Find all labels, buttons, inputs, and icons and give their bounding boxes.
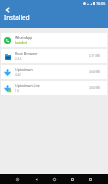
button[interactable]: Home	[50, 175, 59, 184]
button[interactable]: Root Browser	[1, 49, 107, 63]
staticText: 4.42	[15, 73, 21, 77]
staticText: WhatsApp	[15, 35, 33, 40]
staticText: Root Browser	[15, 51, 38, 56]
staticText: 4.71 MB	[89, 54, 100, 58]
button[interactable]: Uptodown	[1, 65, 107, 79]
staticText: 2.4.5	[15, 57, 22, 61]
staticText: Uptodown Lite	[15, 83, 40, 88]
button[interactable]: Recent apps	[68, 175, 77, 184]
staticText: Installed	[4, 13, 30, 22]
button[interactable]: Uptodown Lite	[1, 81, 107, 95]
staticText: 1.6	[15, 89, 20, 93]
button[interactable]: Back	[32, 175, 41, 184]
button[interactable]: Screenshot	[86, 175, 95, 184]
staticText: Installed	[15, 41, 27, 45]
staticText: Uptodown	[15, 67, 33, 72]
button[interactable]: WhatsApp	[1, 33, 107, 47]
staticText: 10:06	[96, 1, 106, 6]
staticText: 4.04 MB	[89, 86, 100, 90]
button[interactable]: Back	[2, 5, 12, 15]
staticText: 4.64 MB	[89, 70, 100, 74]
button[interactable]: Menu	[13, 175, 22, 184]
